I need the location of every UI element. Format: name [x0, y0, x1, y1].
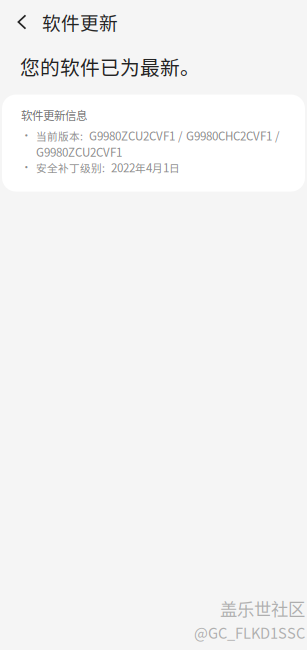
staticText: 您的软件已为最新。 [20, 52, 200, 81]
staticText: 软件更新信息 [21, 107, 87, 123]
staticText: 盖乐世社区 [220, 596, 305, 621]
staticText: 安全补丁级别: 2022年4月1日 [36, 159, 180, 175]
staticText: · [21, 127, 32, 143]
staticText: 软件更新 [42, 8, 118, 35]
button[interactable]: Back [9, 0, 35, 44]
staticText: · [21, 159, 32, 174]
staticText: 当前版本: G9980ZCU2CVF1 / G9980CHC2CVF1 / G9… [36, 127, 280, 160]
staticText: @GC_FLKD1SSC [194, 622, 305, 643]
